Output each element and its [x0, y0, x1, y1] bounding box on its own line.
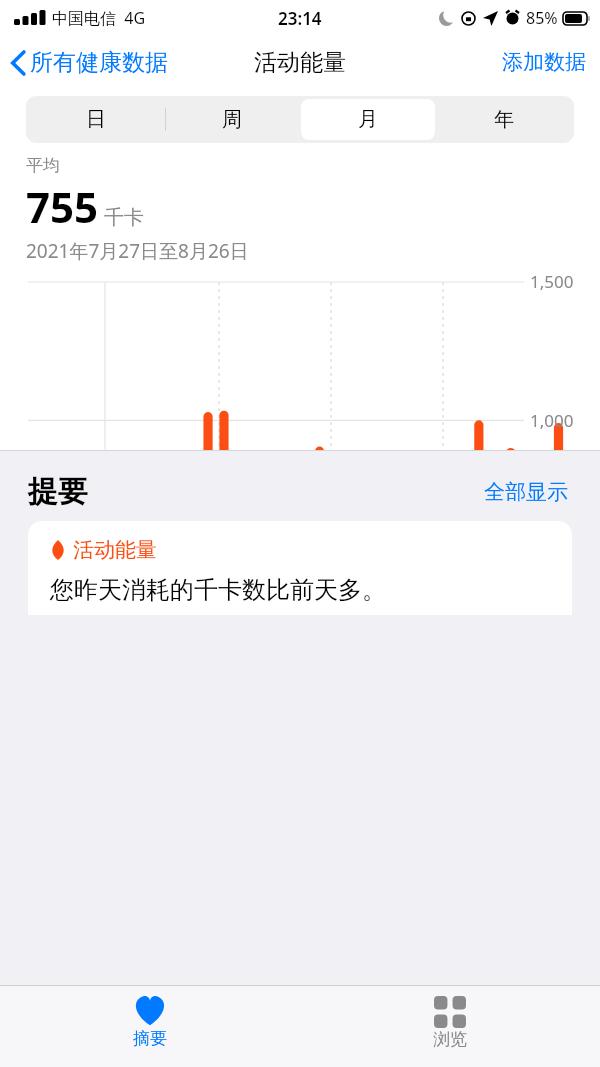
- staticText: 23:14: [278, 7, 322, 30]
- button[interactable]: 活动能量: [28, 521, 572, 615]
- staticText: 您昨天消耗的千卡数比前天多。: [50, 575, 386, 605]
- staticText: 摘要: [133, 1028, 167, 1049]
- button[interactable]: 月: [301, 99, 435, 140]
- staticText: 月: [358, 107, 378, 132]
- staticText: 年: [494, 107, 514, 132]
- staticText: 1,000: [530, 409, 574, 432]
- button[interactable]: 所有健康数据: [0, 42, 176, 83]
- button[interactable]: 全部显示: [480, 475, 572, 509]
- staticText: 千卡: [104, 205, 144, 230]
- staticText: 中国电信 4G: [52, 7, 146, 29]
- staticText: 日: [86, 107, 106, 132]
- button[interactable]: 浏览: [300, 986, 600, 1067]
- staticText: 755: [26, 178, 99, 235]
- staticText: 2021年7月27日至8月26日: [26, 238, 249, 264]
- button[interactable]: 日: [29, 99, 163, 140]
- button[interactable]: 添加数据: [488, 41, 600, 83]
- staticText: 1,500: [530, 270, 574, 293]
- staticText: 所有健康数据: [30, 48, 168, 77]
- staticText: 提要: [28, 473, 88, 511]
- staticText: 平均: [26, 155, 60, 176]
- staticText: 85%: [526, 7, 558, 29]
- button[interactable]: 摘要: [0, 986, 300, 1067]
- staticText: 浏览: [433, 1029, 467, 1050]
- button[interactable]: 周: [165, 99, 299, 140]
- button[interactable]: 年: [437, 99, 571, 140]
- staticText: 活动能量: [254, 48, 346, 77]
- staticText: 活动能量: [73, 537, 157, 563]
- staticText: 周: [222, 107, 242, 132]
